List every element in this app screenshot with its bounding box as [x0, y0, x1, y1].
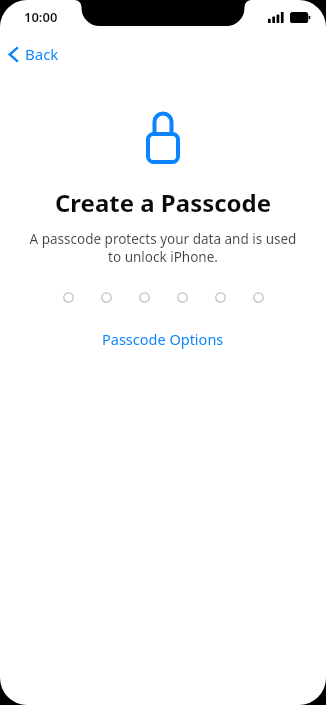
staticText: 10:00 [24, 8, 58, 26]
staticText: Create a Passcode [0, 186, 326, 219]
staticText: Passcode Options [102, 329, 224, 349]
staticText: A passcode protects your data and is use… [26, 230, 300, 266]
button[interactable]: Back [0, 40, 71, 68]
staticText: Back [25, 44, 59, 64]
button[interactable]: Passcode Options [88, 325, 238, 353]
